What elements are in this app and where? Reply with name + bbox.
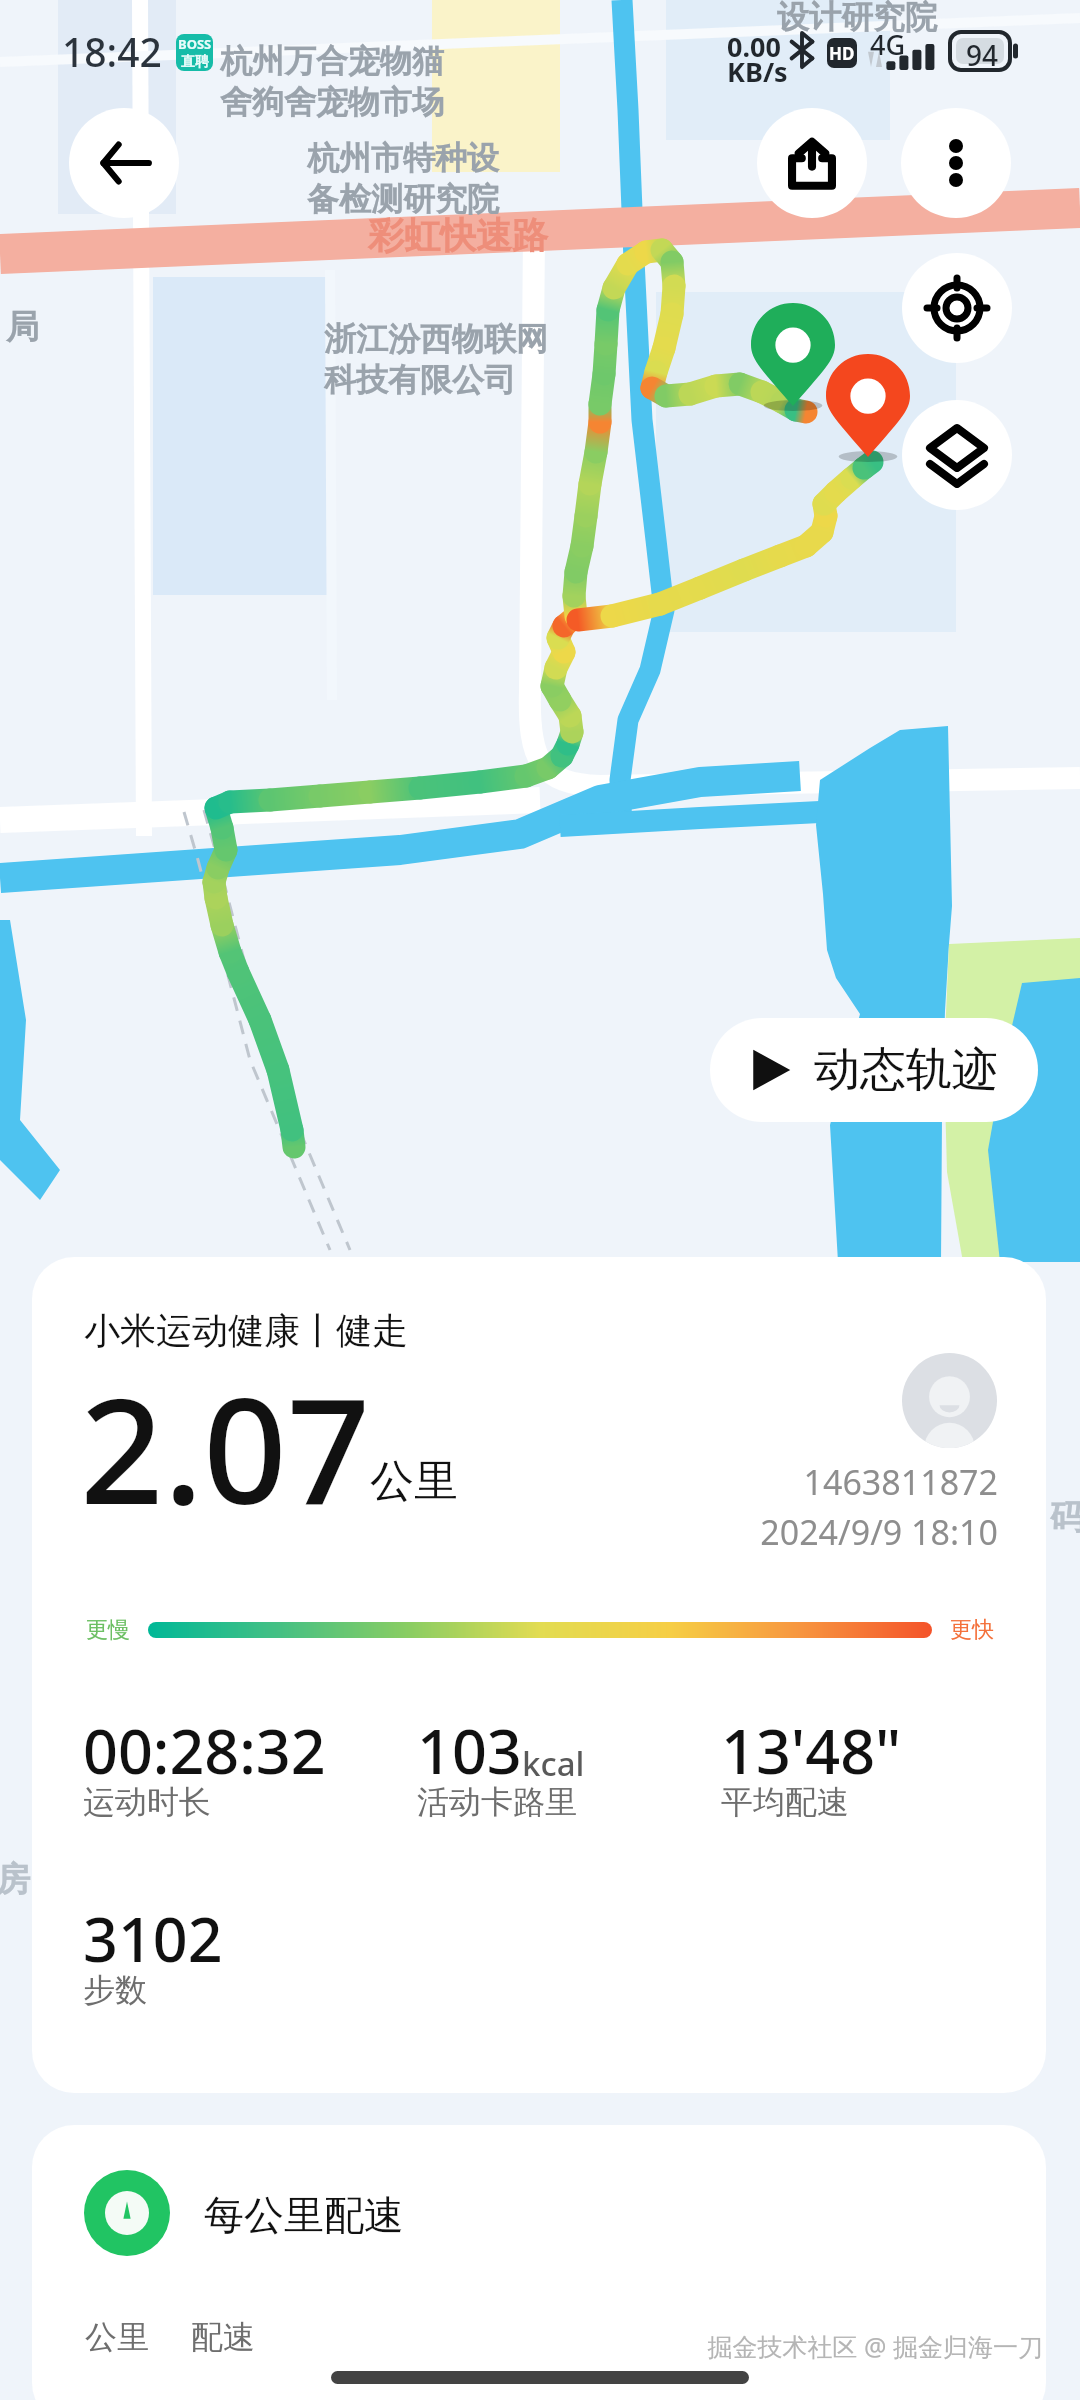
staticText: 13'48" bbox=[721, 1709, 902, 1792]
button[interactable]: 公里 bbox=[85, 2317, 149, 2357]
staticText: 103 bbox=[417, 1709, 522, 1792]
staticText: 1463811872 bbox=[732, 1459, 998, 1505]
staticText: HD bbox=[829, 42, 855, 65]
staticText: 每公里配速 bbox=[204, 2190, 404, 2240]
staticText: 更慢 bbox=[86, 1616, 130, 1644]
staticText: 局 bbox=[6, 306, 39, 348]
button[interactable]: Share bbox=[757, 108, 867, 218]
staticText: 掘金技术社区 @ 掘金归海一刀 bbox=[643, 2329, 1043, 2363]
staticText: 杭州市特种设 备检测研究院 bbox=[307, 138, 499, 220]
staticText: 94 bbox=[950, 36, 1014, 74]
button[interactable]: 每公里配速 bbox=[84, 2170, 404, 2256]
staticText: 小米运动健康丨健走 bbox=[84, 1308, 408, 1353]
staticText: 配速 bbox=[191, 2317, 255, 2357]
staticText: 房 bbox=[0, 1858, 30, 1901]
staticText: 运动时长 bbox=[83, 1782, 211, 1822]
staticText: BOSS bbox=[178, 35, 212, 53]
staticText: 4G bbox=[870, 26, 906, 63]
staticText: 活动卡路里 bbox=[417, 1782, 577, 1822]
staticText: 0.00 KB/s bbox=[727, 28, 788, 90]
staticText: 杭州万合宠物猫 舍狗舍宠物市场 bbox=[220, 41, 444, 123]
staticText: 2.07 bbox=[80, 1348, 371, 1547]
staticText: 动态轨迹 bbox=[814, 1041, 998, 1099]
staticText: 3102 bbox=[83, 1897, 223, 1980]
staticText: 2024/9/9 18:10 bbox=[692, 1509, 998, 1555]
staticText: 公里 bbox=[85, 2317, 149, 2357]
staticText: 公里 bbox=[370, 1454, 458, 1509]
button[interactable]: My location bbox=[902, 253, 1012, 363]
staticText: 码 bbox=[1050, 1496, 1080, 1539]
staticText: 步数 bbox=[83, 1970, 147, 2010]
staticText: kcal bbox=[522, 1741, 585, 1786]
button[interactable]: Back bbox=[69, 108, 179, 218]
staticText: 00:28:32 bbox=[83, 1709, 326, 1792]
button[interactable]: More options bbox=[901, 108, 1011, 218]
button[interactable]: Map layers bbox=[902, 400, 1012, 510]
staticText: 浙江汾西物联网 科技有限公司 bbox=[324, 319, 548, 401]
staticText: 直聘 bbox=[181, 53, 209, 71]
staticText: 设计研究院 bbox=[777, 0, 937, 37]
button[interactable]: 配速 bbox=[191, 2317, 255, 2357]
button[interactable]: 动态轨迹 bbox=[710, 1018, 1038, 1122]
staticText: 平均配速 bbox=[721, 1782, 849, 1822]
staticText: 18:42 bbox=[62, 25, 162, 78]
staticText: 彩虹快速路 bbox=[368, 213, 548, 258]
staticText: 更快 bbox=[950, 1616, 994, 1644]
